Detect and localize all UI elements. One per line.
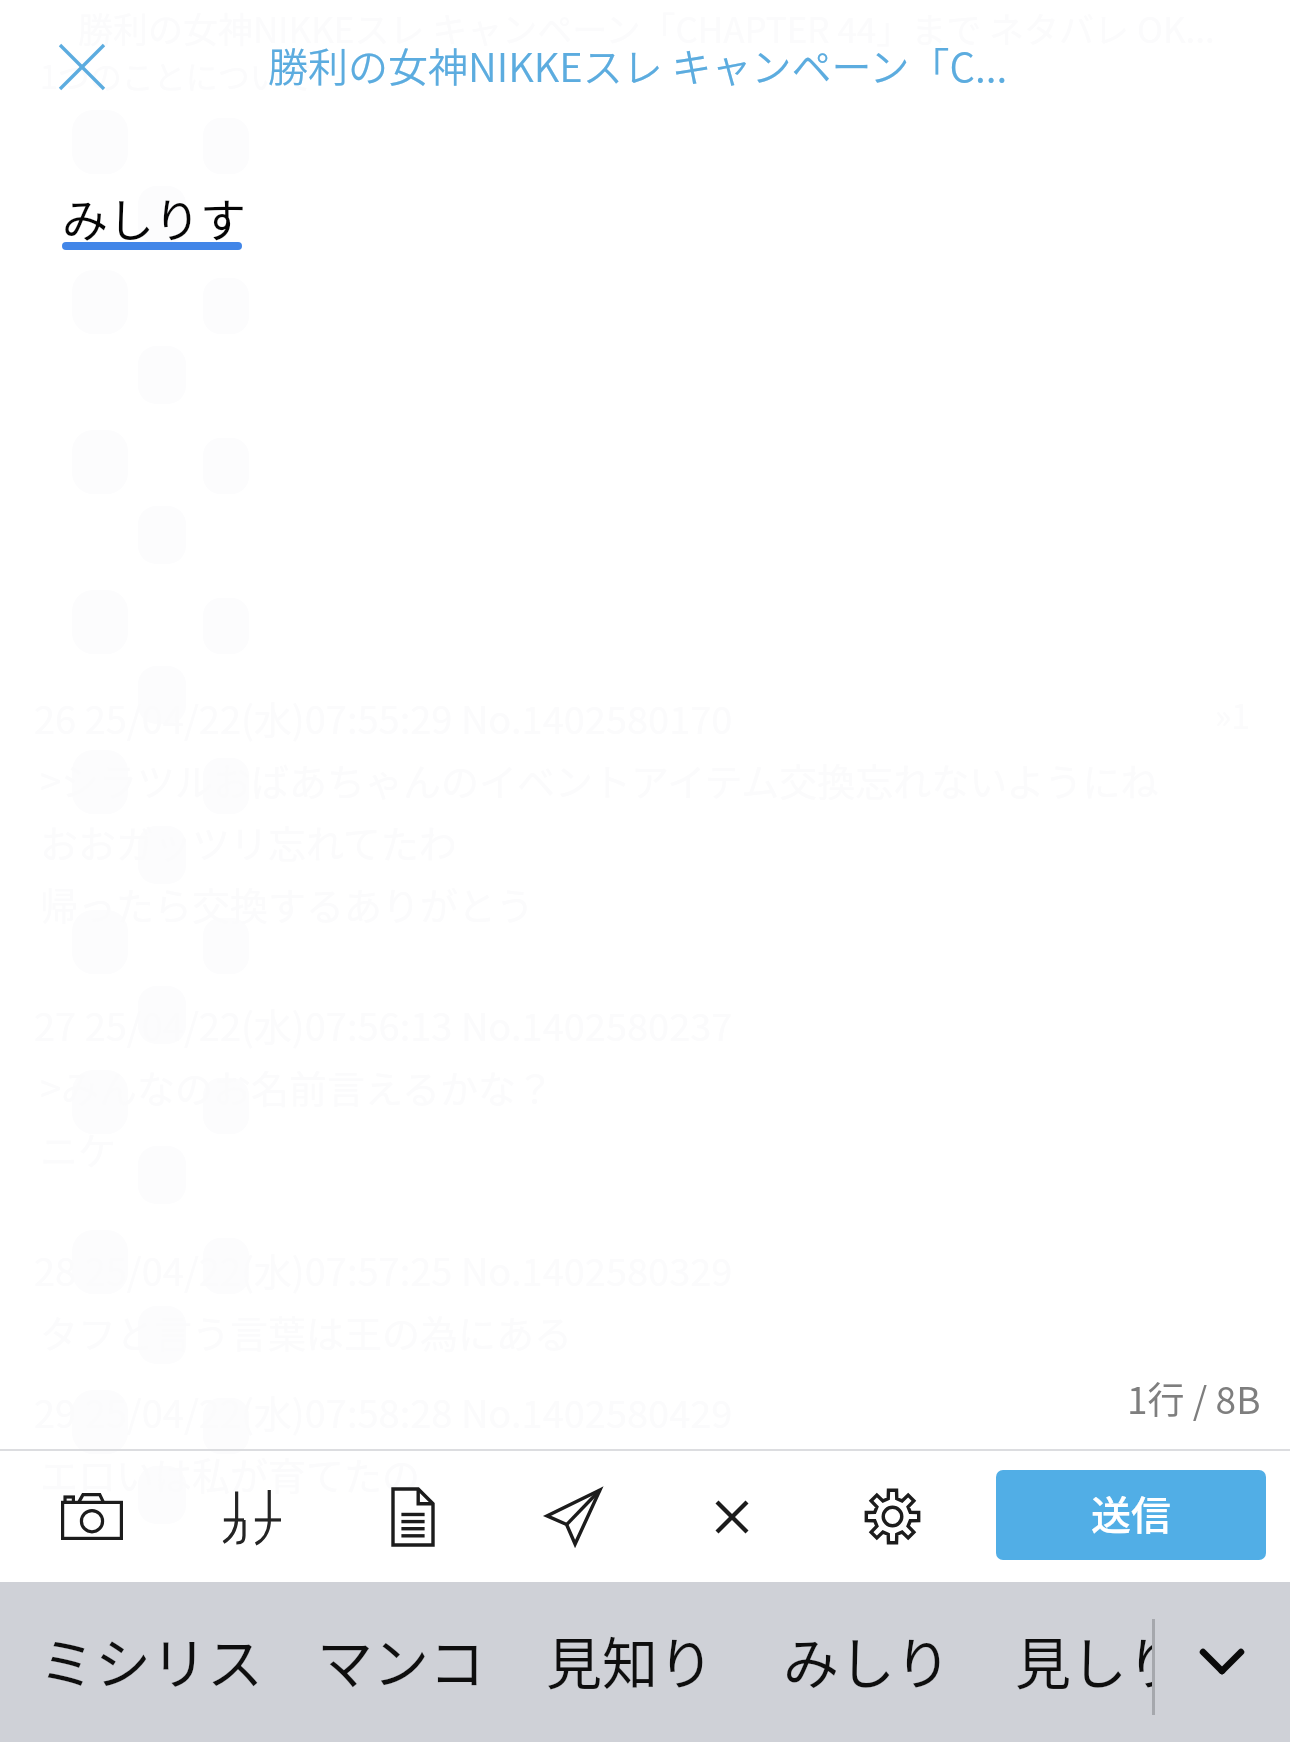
staticText: みしりす [62, 184, 246, 251]
staticText: 勝利の女神NIKKEスレ キャンペーン「C... [268, 36, 1008, 94]
button[interactable]: 送信 [996, 1470, 1266, 1560]
staticText: 1行 / 8B [1127, 1371, 1261, 1425]
button[interactable]: Attach photo [8, 1451, 176, 1582]
staticText: 見知り [546, 1619, 714, 1700]
button[interactable]: More suggestions [1166, 1605, 1278, 1717]
staticText: 送信 [1091, 1484, 1171, 1542]
staticText: エロいは私が育てたの [40, 1446, 421, 1501]
staticText: マンコ [317, 1619, 485, 1700]
button[interactable]: マンコ [295, 1582, 507, 1742]
staticText: 1つのことについて [40, 52, 313, 98]
button[interactable]: ミシリス [17, 1582, 285, 1742]
button[interactable]: Insert template [329, 1451, 497, 1582]
button[interactable]: Settings [808, 1451, 976, 1582]
button[interactable]: Close [30, 15, 134, 119]
button[interactable]: Kana input [168, 1451, 336, 1582]
staticText: 見しり [1015, 1619, 1153, 1700]
button[interactable]: みしり [761, 1582, 973, 1742]
button[interactable]: 見しり [993, 1582, 1153, 1742]
button[interactable]: 見知り [524, 1582, 736, 1742]
staticText: ミシリス [39, 1619, 263, 1700]
staticText: みしり [783, 1619, 951, 1700]
staticText: 勝利の女神NIKKEスレ キャンペーン「CHAPTER 44」まで ネタバレ O… [78, 2, 1215, 53]
button[interactable]: Clear text [648, 1451, 816, 1582]
button[interactable]: Quick send [489, 1451, 657, 1582]
